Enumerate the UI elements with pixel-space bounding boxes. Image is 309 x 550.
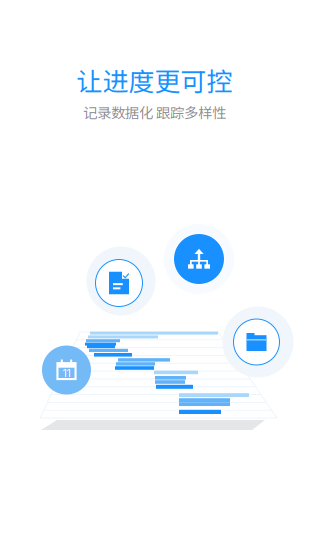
staticText: 让进度更可控 xyxy=(76,61,232,99)
staticText: 11 xyxy=(62,366,70,380)
staticText: 记录数据化 跟踪多样性 xyxy=(83,102,226,122)
